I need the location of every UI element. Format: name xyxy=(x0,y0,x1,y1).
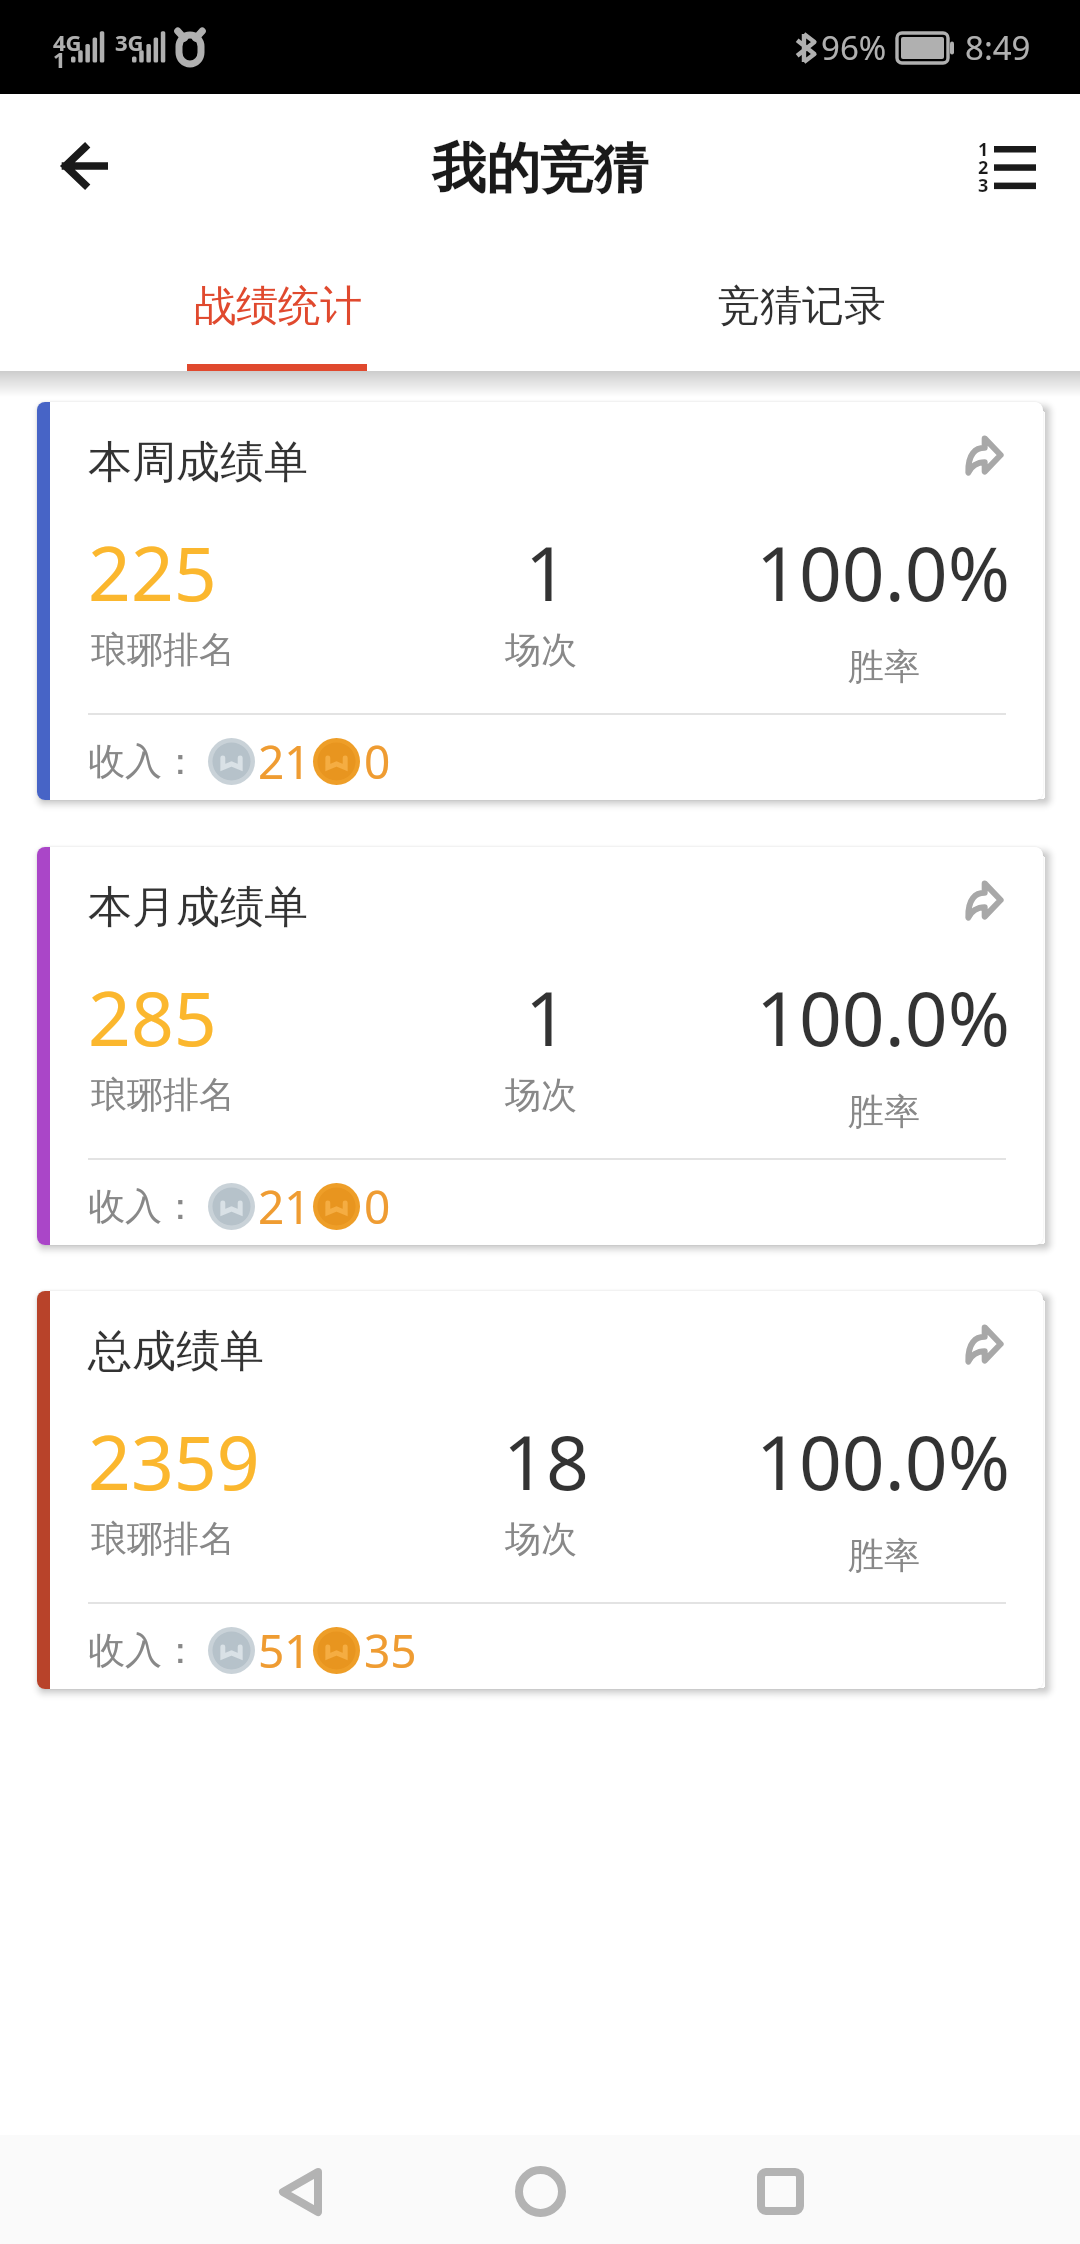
staticText: 胜率 xyxy=(848,1089,920,1134)
button[interactable]: Share xyxy=(955,871,1013,929)
staticText: 8:49 xyxy=(965,25,1031,70)
staticText: 1 xyxy=(978,137,989,162)
staticText: 琅琊排名 xyxy=(91,1516,235,1561)
button[interactable]: 竞猜记录 xyxy=(540,244,1080,371)
staticText: 285 xyxy=(88,966,217,1068)
button[interactable]: Share xyxy=(955,426,1013,484)
staticText: 100.0% xyxy=(756,966,1011,1068)
staticText: 收入： xyxy=(88,738,199,785)
button[interactable]: Recent apps xyxy=(660,2137,900,2244)
staticText: 本周成绩单 xyxy=(88,435,308,490)
staticText: 1 xyxy=(525,521,568,623)
staticText: 225 xyxy=(88,521,217,623)
staticText: 21 xyxy=(258,1175,311,1238)
button[interactable]: 本周成绩单 xyxy=(37,402,1043,800)
staticText: 0 xyxy=(364,1175,391,1238)
staticText: 胜率 xyxy=(848,1533,920,1578)
staticText: 21 xyxy=(258,730,311,793)
staticText: 1 xyxy=(525,966,568,1068)
staticText: 场次 xyxy=(505,1516,577,1561)
staticText: 本月成绩单 xyxy=(88,880,308,935)
staticText: 我的竞猜 xyxy=(432,135,648,203)
staticText: 战绩统计 xyxy=(194,280,362,333)
button[interactable]: 本月成绩单 xyxy=(37,847,1043,1245)
staticText: 总成绩单 xyxy=(88,1324,264,1379)
staticText: 18 xyxy=(503,1410,589,1512)
staticText: 100.0% xyxy=(756,1410,1011,1512)
staticText: 0 xyxy=(364,730,391,793)
staticText: 3 xyxy=(978,173,989,198)
staticText: 35 xyxy=(364,1619,417,1682)
button[interactable]: Share xyxy=(955,1315,1013,1373)
button[interactable]: 战绩统计 xyxy=(0,244,540,371)
staticText: 收入： xyxy=(88,1627,199,1674)
button[interactable]: Ranking list xyxy=(959,113,1055,209)
staticText: 2359 xyxy=(88,1410,260,1512)
staticText: 收入： xyxy=(88,1183,199,1230)
button[interactable]: Back xyxy=(180,2137,420,2244)
button[interactable]: 总成绩单 xyxy=(37,1291,1043,1689)
staticText: 3G xyxy=(115,27,144,57)
button[interactable]: Home xyxy=(420,2137,660,2244)
staticText: 场次 xyxy=(505,627,577,672)
staticText: 96% xyxy=(821,25,887,70)
staticText: 胜率 xyxy=(848,644,920,689)
button[interactable]: Back xyxy=(36,118,132,214)
staticText: 竞猜记录 xyxy=(718,280,886,333)
staticText: 1 xyxy=(53,44,66,74)
staticText: 场次 xyxy=(505,1072,577,1117)
staticText: 51 xyxy=(258,1619,311,1682)
staticText: 4G xyxy=(53,27,82,57)
staticText: 2 xyxy=(978,155,989,180)
staticText: 琅琊排名 xyxy=(91,627,235,672)
staticText: 琅琊排名 xyxy=(91,1072,235,1117)
staticText: 100.0% xyxy=(756,521,1011,623)
